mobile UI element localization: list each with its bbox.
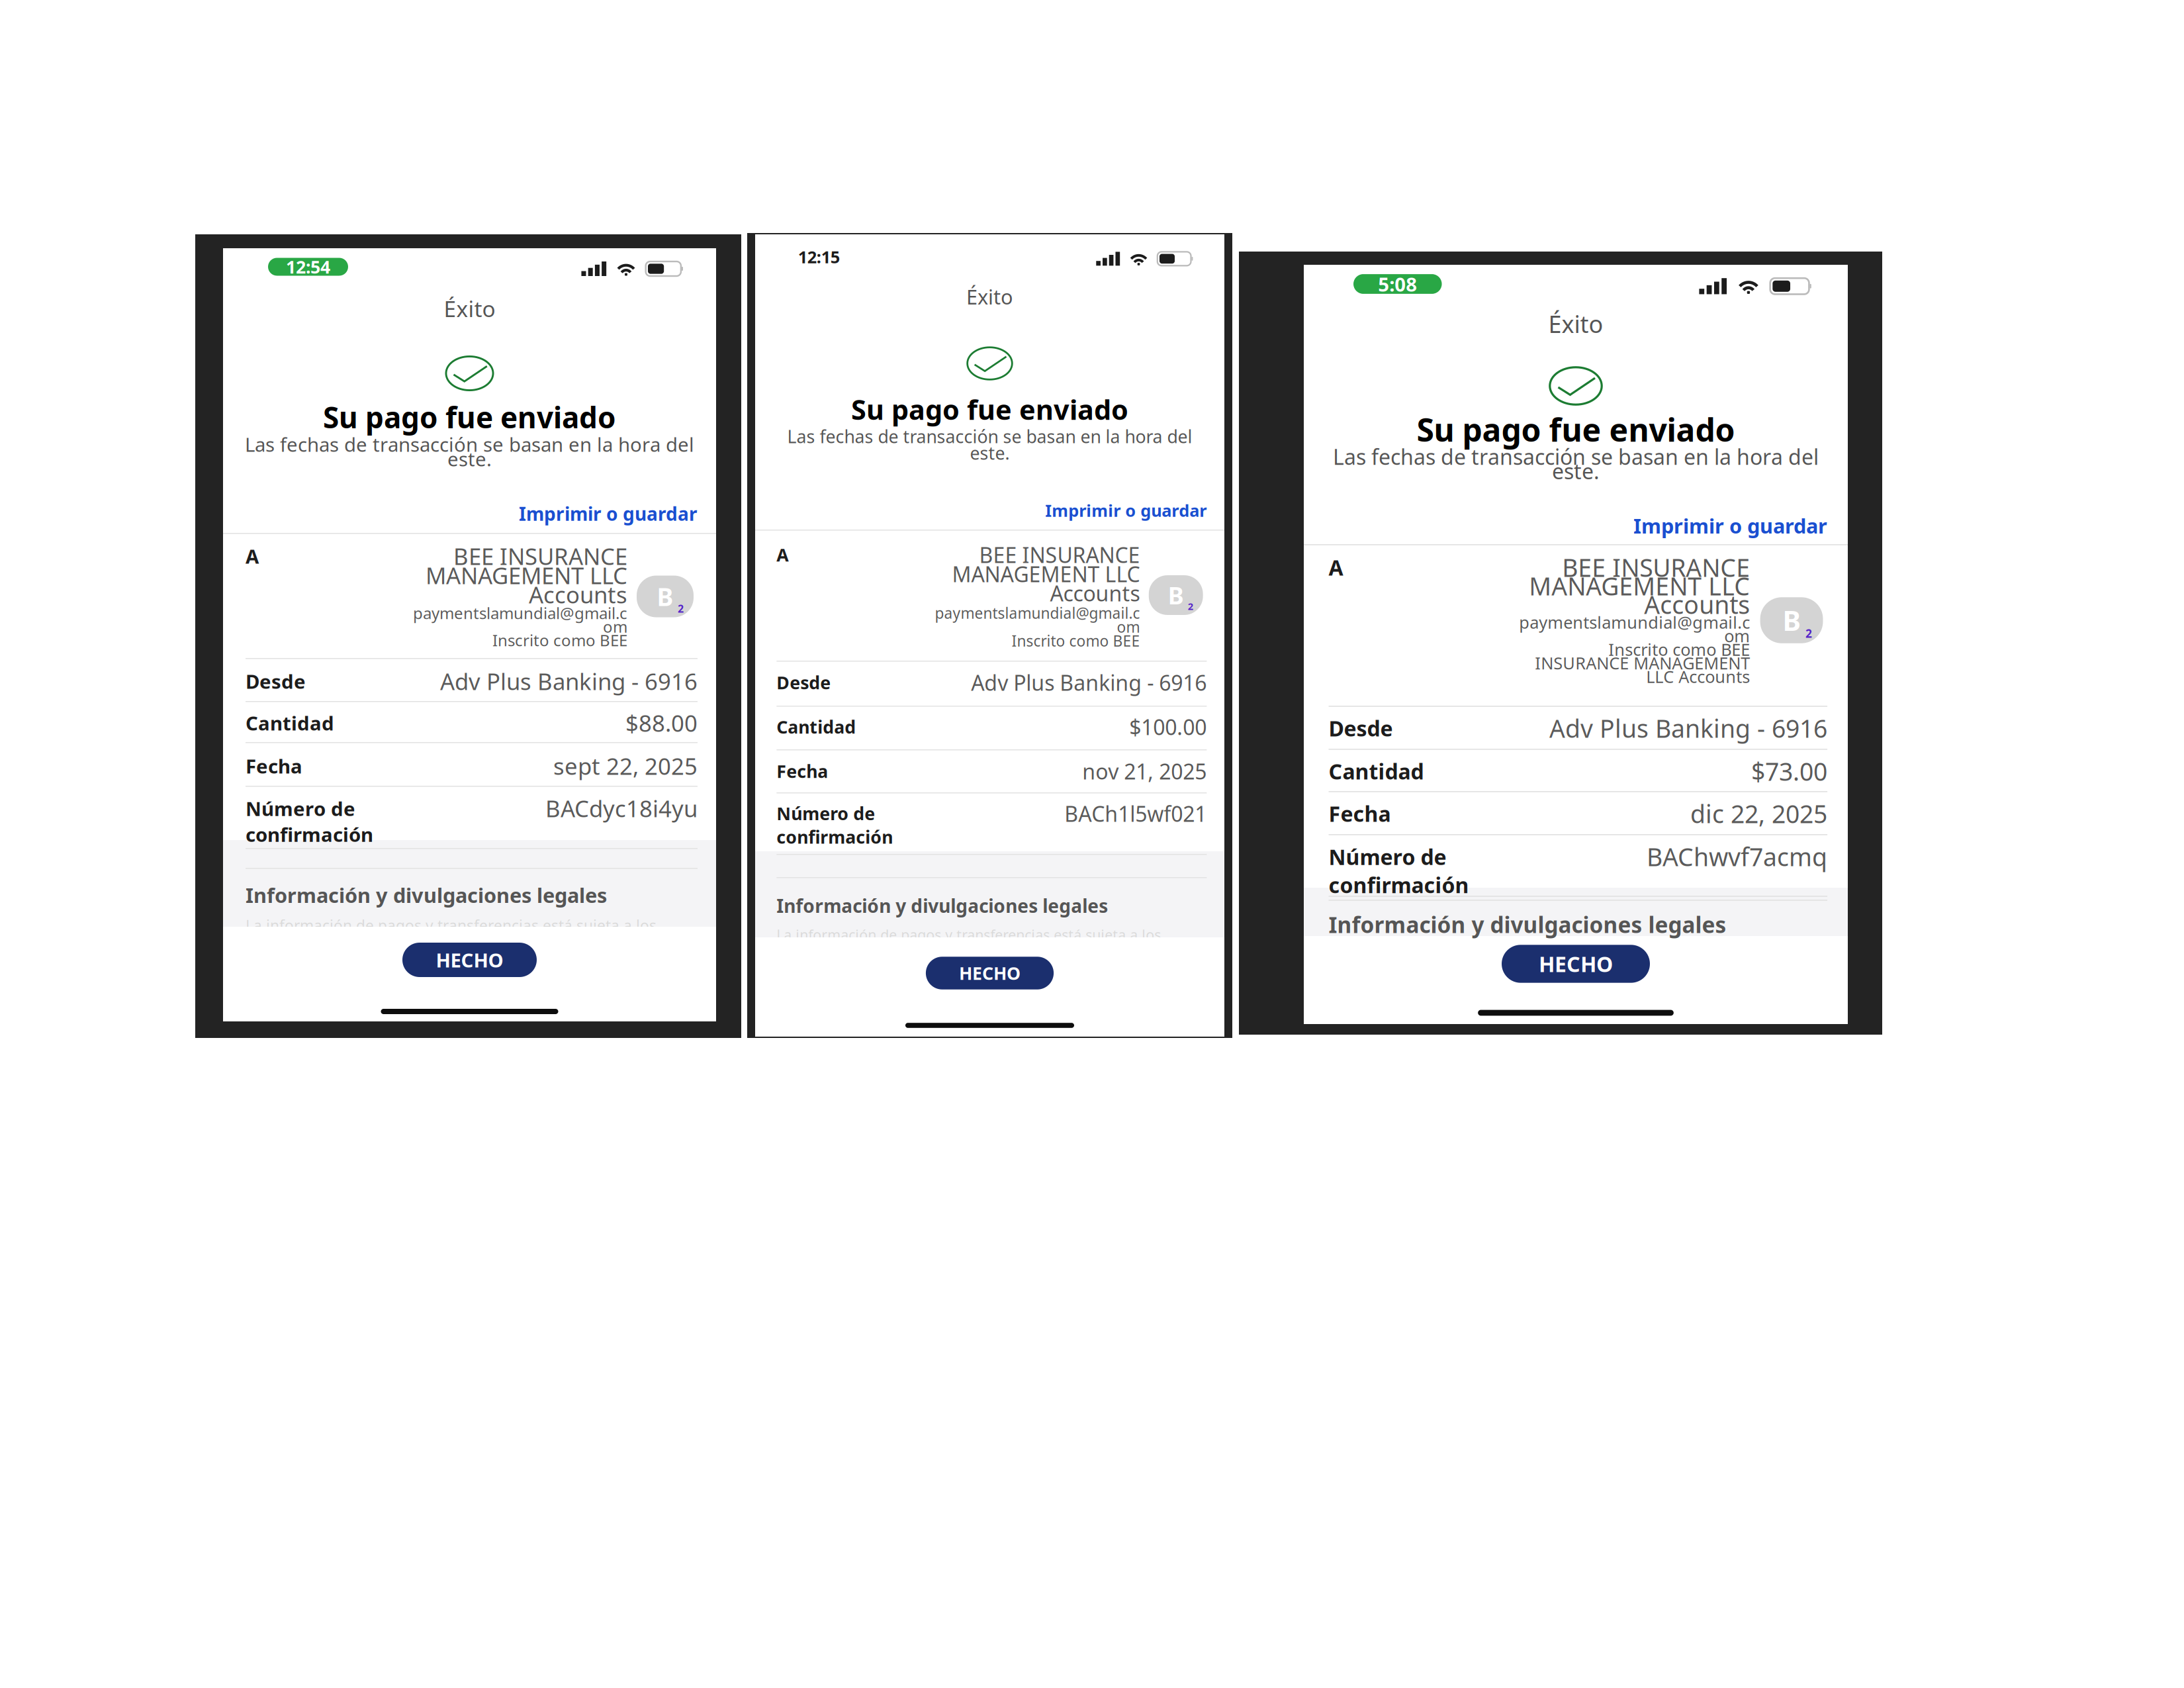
staticText: Imprimir o guardar	[519, 501, 698, 526]
staticText: Las fechas de transacción se basan en la…	[245, 431, 694, 457]
staticText: Inscrito como BEE	[1608, 638, 1750, 661]
staticText: Información y divulgaciones legales	[246, 881, 607, 908]
staticText: Su pago fue enviado	[1417, 408, 1735, 450]
button[interactable]: HECHO	[926, 957, 1054, 989]
staticText: paymentslamundial@gmail.c	[1519, 611, 1750, 633]
staticText: Información y divulgaciones legales	[777, 893, 1108, 918]
staticText: LLC Accounts	[1646, 665, 1750, 688]
staticText: Éxito	[966, 283, 1013, 310]
staticText: paymentslamundial@gmail.c	[935, 603, 1140, 623]
staticText: BAChwvf7acmq	[1647, 840, 1827, 873]
staticText: Las fechas de transacción se basan en la…	[787, 425, 1192, 448]
staticText: 12:54	[286, 255, 330, 278]
staticText: Cantidad	[777, 715, 856, 739]
staticText: om	[1724, 625, 1750, 647]
staticText: om	[1117, 617, 1140, 637]
staticText: 12:15	[798, 246, 840, 268]
staticText: 2	[1805, 626, 1812, 641]
staticText: Adv Plus Banking - 6916	[1549, 712, 1827, 745]
staticText: Accounts	[529, 579, 627, 610]
staticText: 5:08	[1378, 271, 1417, 297]
staticText: Fecha	[777, 759, 828, 783]
staticText: Su pago fue enviado	[323, 398, 616, 436]
staticText: Accounts	[1050, 579, 1140, 607]
staticText: MANAGEMENT LLC	[426, 560, 627, 590]
staticText: Adv Plus Banking - 6916	[971, 668, 1207, 697]
staticText: om	[603, 616, 627, 637]
staticText: HECHO	[436, 947, 503, 973]
staticText: dic 22, 2025	[1690, 797, 1827, 830]
staticText: este.	[1552, 457, 1600, 485]
staticText: MANAGEMENT LLC	[952, 560, 1140, 588]
staticText: Su pago fue enviado	[851, 391, 1128, 427]
staticText: Número de confirmación	[777, 802, 893, 848]
staticText: Desde	[1329, 714, 1393, 742]
staticText: Desde	[777, 671, 831, 694]
staticText: Información y divulgaciones legales	[1329, 910, 1726, 939]
staticText: INSURANCE MANAGEMENT	[1535, 652, 1750, 674]
staticText: Éxito	[444, 294, 495, 323]
button[interactable]: HECHO	[402, 943, 537, 977]
button[interactable]: HECHO	[1502, 945, 1650, 983]
staticText: A	[1329, 553, 1343, 581]
staticText: BEE INSURANCE	[453, 541, 627, 571]
staticText: 2	[1188, 600, 1193, 613]
staticText: $88.00	[625, 708, 698, 738]
staticText: Fecha	[1329, 800, 1391, 828]
staticText: La información de pagos y transferencias…	[777, 925, 1161, 944]
staticText: BACh1l5wf021	[1064, 800, 1207, 828]
staticText: Cantidad	[1329, 757, 1424, 785]
staticText: BACdyc18i4yu	[545, 793, 698, 823]
staticText: B	[657, 580, 673, 613]
staticText: Adv Plus Banking - 6916	[440, 666, 698, 696]
staticText: B	[1168, 579, 1184, 611]
staticText: 2	[678, 601, 684, 615]
staticText: sept 22, 2025	[553, 751, 698, 781]
staticText: La información de pagos y transferencias…	[1329, 948, 1756, 969]
staticText: Accounts	[1644, 588, 1750, 621]
staticText: Imprimir o guardar	[1045, 499, 1207, 521]
button[interactable]: Información y divulgaciones legales	[1329, 912, 1827, 937]
button[interactable]: Imprimir o guardar	[777, 495, 1207, 526]
staticText: La información de pagos y transferencias…	[246, 915, 657, 935]
staticText: Imprimir o guardar	[1633, 512, 1827, 539]
staticText: Fecha	[246, 753, 302, 779]
staticText: Las fechas de transacción se basan en la…	[1333, 443, 1819, 471]
staticText: Cantidad	[246, 710, 334, 736]
staticText: A	[777, 543, 788, 566]
staticText: A	[246, 543, 259, 569]
staticText: BEE INSURANCE	[1562, 551, 1750, 584]
staticText: nov 21, 2025	[1082, 757, 1207, 785]
staticText: Éxito	[1548, 308, 1603, 340]
staticText: MANAGEMENT LLC	[1529, 569, 1750, 602]
staticText: Número de confirmación	[1329, 843, 1469, 899]
button[interactable]: Información y divulgaciones legales	[246, 884, 698, 906]
staticText: $73.00	[1751, 755, 1827, 788]
staticText: este.	[447, 446, 492, 472]
button[interactable]: Imprimir o guardar	[1329, 508, 1827, 543]
staticText: B	[1783, 602, 1800, 638]
button[interactable]: Información y divulgaciones legales	[777, 895, 1207, 916]
staticText: Desde	[246, 668, 306, 694]
staticText: este.	[970, 441, 1010, 465]
staticText: Número de confirmación	[246, 796, 373, 847]
staticText: Inscrito como BEE	[1012, 631, 1140, 651]
staticText: HECHO	[1539, 950, 1613, 978]
button[interactable]: Imprimir o guardar	[246, 498, 698, 530]
staticText: HECHO	[959, 961, 1021, 985]
staticText: $100.00	[1129, 713, 1207, 741]
staticText: BEE INSURANCE	[979, 541, 1140, 569]
staticText: Inscrito como BEE	[492, 630, 627, 651]
staticText: paymentslamundial@gmail.c	[413, 602, 627, 624]
